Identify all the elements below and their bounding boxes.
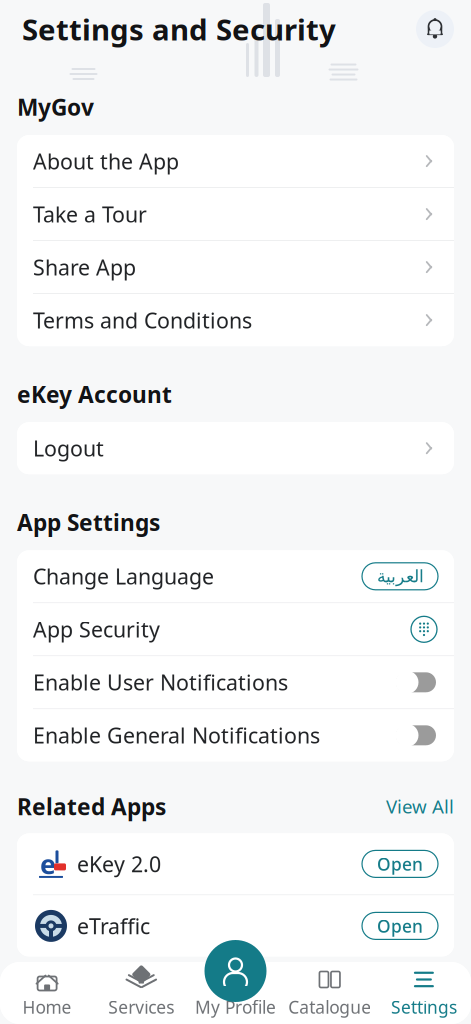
button[interactable]: App Security — [17, 603, 454, 655]
button[interactable]: Terms and Conditions — [17, 294, 454, 346]
button[interactable]: View All — [386, 794, 454, 819]
button[interactable]: Settings — [377, 964, 471, 1022]
button[interactable]: Catalogue — [283, 964, 377, 1022]
button[interactable]: Enable General Notifications — [17, 709, 454, 761]
staticText: Related Apps — [17, 791, 166, 821]
staticText: Share App — [33, 253, 136, 281]
staticText: Services — [108, 995, 174, 1018]
staticText: Enable User Notifications — [33, 668, 288, 696]
button[interactable]: View All — [386, 987, 454, 1012]
staticText: Catalogue — [288, 995, 371, 1018]
button[interactable]: Enable General Notifications — [394, 723, 438, 747]
staticText: Home — [23, 995, 72, 1018]
staticText: Take a Tour — [33, 200, 147, 228]
button[interactable]: Take a Tour — [17, 188, 454, 240]
staticText: eTraffic — [77, 912, 150, 940]
staticText: العربية — [376, 566, 423, 586]
button[interactable]: My Profile — [204, 940, 266, 1002]
staticText: App Settings — [17, 507, 160, 537]
staticText: Settings and Security — [22, 9, 336, 48]
button[interactable]: Logout — [17, 422, 454, 474]
staticText: Settings — [391, 995, 457, 1018]
staticText: Enable General Notifications — [33, 721, 320, 749]
staticText: MyGov — [17, 92, 94, 122]
button[interactable]: Open — [362, 912, 438, 939]
button[interactable]: Enable User Notifications — [394, 670, 438, 694]
staticText: Open — [377, 914, 423, 937]
button[interactable]: Notifications — [416, 10, 454, 48]
staticText: Emergency Contacts — [17, 984, 251, 1014]
staticText: eKey Account — [17, 379, 172, 409]
button[interactable]: Change Language — [17, 550, 454, 602]
staticText: View All — [386, 794, 454, 819]
button[interactable]: Home — [0, 964, 94, 1022]
button[interactable]: Enable User Notifications — [17, 656, 454, 708]
staticText: App Security — [33, 615, 160, 643]
staticText: Open — [377, 852, 423, 875]
staticText: View All — [386, 987, 454, 1012]
staticText: eKey 2.0 — [77, 850, 161, 878]
button[interactable]: العربية — [362, 563, 438, 590]
staticText: About the App — [33, 147, 179, 175]
staticText: e — [40, 846, 56, 882]
staticText: Terms and Conditions — [33, 306, 252, 334]
staticText: My Profile — [195, 995, 276, 1018]
staticText: Logout — [33, 434, 104, 462]
button[interactable]: Services — [94, 964, 188, 1022]
button[interactable]: Open — [362, 850, 438, 877]
button[interactable]: App Security passcode — [410, 615, 438, 643]
staticText: Change Language — [33, 562, 214, 590]
button[interactable]: Share App — [17, 241, 454, 293]
button[interactable]: My Profile — [188, 964, 283, 1022]
button[interactable]: About the App — [17, 135, 454, 187]
